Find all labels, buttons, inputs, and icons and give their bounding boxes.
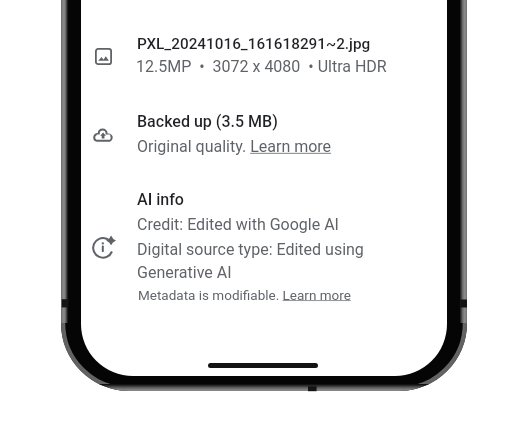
other: Photo (95, 48, 112, 65)
button[interactable]: Photo (81, 18, 447, 92)
staticText: Credit: Edited with Google AI (137, 215, 339, 234)
staticText: Original quality. Learn more (137, 137, 332, 156)
staticText: AI info (137, 190, 184, 209)
other: Home gesture handle (208, 363, 318, 368)
staticText: Backed up (3.5 MB) (137, 112, 278, 131)
staticText: Metadata is modifiable. Learn more (138, 287, 351, 303)
other: AI info (92, 235, 116, 259)
staticText: PXL_20241016_161618291~2.jpg (137, 35, 371, 53)
staticText: Digital source type: Edited using Genera… (137, 240, 364, 282)
button[interactable]: Backed up to Google Photos (81, 98, 447, 168)
staticText: 12.5MP • 3072 x 4080 • Ultra HDR (136, 57, 387, 76)
button[interactable]: AI info (81, 176, 447, 308)
other: Backed up to Google Photos (93, 125, 114, 146)
